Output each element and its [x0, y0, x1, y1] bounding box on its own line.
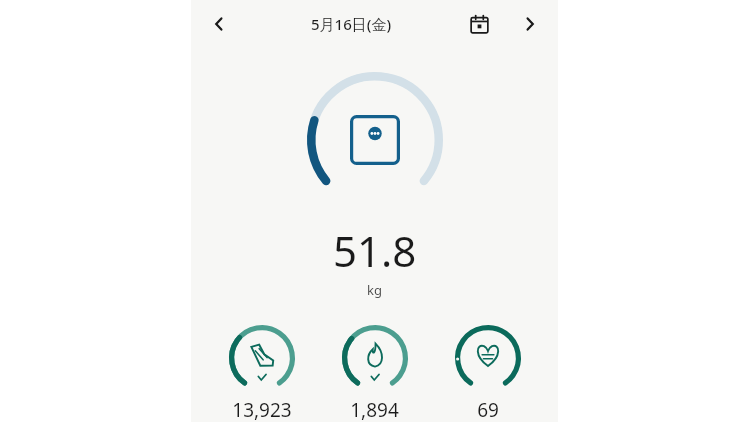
staticText: 13,923 [232, 397, 292, 422]
button[interactable]: Next day [502, 0, 558, 48]
staticText: 51.8 [333, 222, 417, 279]
button[interactable]: 69 [431, 325, 544, 422]
button[interactable]: Calendar [456, 0, 502, 48]
staticText: 5月16日(金) [311, 14, 392, 34]
staticText: 1,894 [350, 397, 399, 422]
button[interactable]: 13,923 [205, 325, 318, 422]
staticText: kg [367, 281, 382, 299]
staticText: 69 [477, 397, 499, 422]
button[interactable]: 1,894 [318, 325, 431, 422]
button[interactable]: Previous day [191, 0, 247, 48]
